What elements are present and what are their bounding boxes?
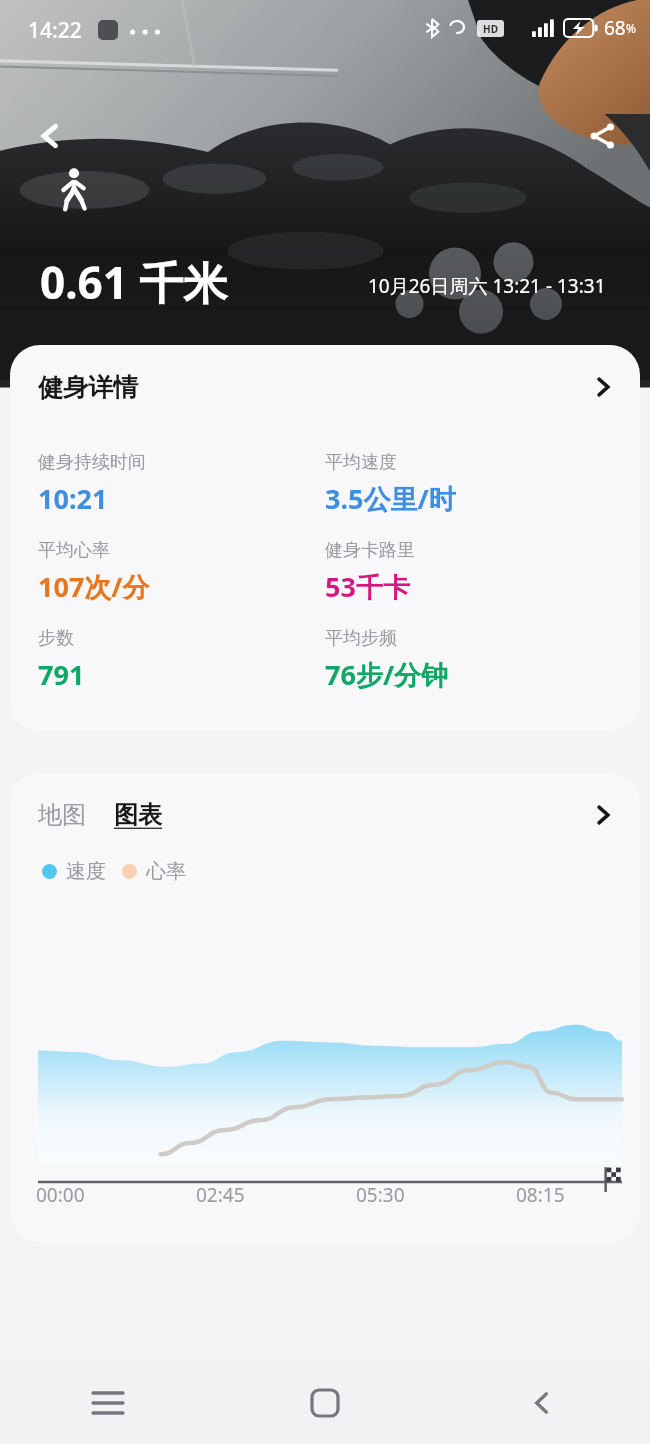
- staticText: 02:45: [196, 1182, 245, 1208]
- staticText: 健身详情: [38, 372, 138, 403]
- staticText: 08:15: [516, 1182, 565, 1208]
- staticText: %: [626, 20, 636, 36]
- button[interactable]: Back: [22, 108, 78, 164]
- staticText: HD: [483, 22, 498, 36]
- staticText: 53千卡: [325, 568, 410, 605]
- staticText: 心率: [146, 859, 186, 884]
- staticText: 速度: [66, 859, 106, 884]
- button[interactable]: 地图: [38, 794, 86, 836]
- staticText: 10:21: [38, 480, 108, 517]
- staticText: 76步/分钟: [325, 656, 449, 693]
- button[interactable]: Recent apps: [0, 1362, 216, 1444]
- staticText: 791: [38, 656, 85, 693]
- staticText: 10月26日周六 13:21 - 13:31: [368, 273, 606, 299]
- staticText: 步数: [38, 627, 74, 650]
- staticText: 05:30: [356, 1182, 405, 1208]
- button[interactable]: Home: [216, 1362, 433, 1444]
- staticText: 14:22: [28, 16, 82, 45]
- staticText: 平均步频: [325, 627, 397, 650]
- staticText: 健身持续时间: [38, 451, 146, 474]
- button[interactable]: 健身详情: [10, 345, 640, 429]
- staticText: 平均心率: [38, 539, 110, 562]
- staticText: 3.5公里/时: [325, 480, 456, 517]
- button[interactable]: Open chart: [592, 804, 614, 826]
- staticText: 平均速度: [325, 451, 397, 474]
- staticText: 68: [604, 15, 626, 41]
- button[interactable]: Back: [433, 1362, 650, 1444]
- staticText: 健身卡路里: [325, 539, 415, 562]
- staticText: 地图: [38, 800, 86, 830]
- button[interactable]: 图表: [114, 794, 162, 836]
- staticText: 107次/分: [38, 568, 150, 605]
- staticText: 图表: [114, 800, 162, 830]
- button[interactable]: Share: [574, 108, 630, 164]
- staticText: 0.61 千米: [40, 252, 228, 312]
- staticText: 00:00: [36, 1182, 85, 1208]
